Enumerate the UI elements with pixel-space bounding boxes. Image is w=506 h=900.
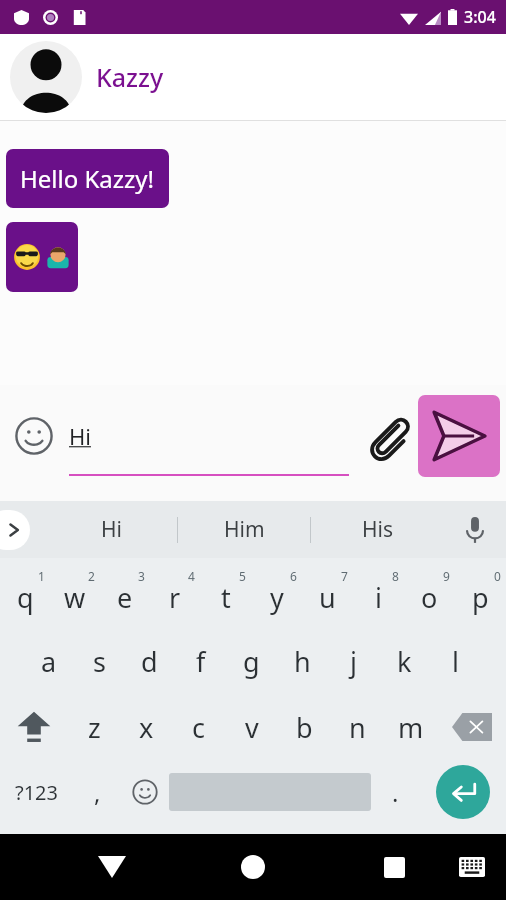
staticText: f — [196, 643, 206, 680]
staticText: q — [17, 579, 34, 616]
button[interactable]: a — [24, 634, 74, 688]
staticText: j — [350, 643, 357, 680]
button[interactable]: Hi — [44, 501, 178, 558]
staticText: Kazzy — [96, 60, 164, 94]
button[interactable] — [6, 222, 78, 292]
staticText: x — [139, 709, 154, 746]
button[interactable]: Home — [229, 843, 277, 891]
button[interactable]: b — [278, 700, 331, 754]
button[interactable]: j — [328, 634, 379, 688]
button[interactable]: c — [172, 700, 225, 754]
button[interactable]: p — [455, 566, 506, 622]
button[interactable]: Back — [88, 843, 136, 891]
button[interactable]: k — [379, 634, 430, 688]
button[interactable]: Switch keyboard — [450, 845, 494, 889]
button[interactable]: Attach — [362, 412, 414, 464]
staticText: 3 — [138, 568, 145, 584]
staticText: y — [270, 579, 284, 616]
staticText: 7 — [341, 568, 348, 584]
button[interactable]: Voice input — [444, 501, 506, 558]
button[interactable]: i — [353, 566, 404, 622]
button[interactable]: Enter — [419, 764, 506, 820]
button[interactable]: Backspace — [437, 700, 506, 754]
button[interactable]: Him — [178, 501, 311, 558]
staticText: 5 — [239, 568, 246, 584]
button[interactable]: o — [404, 566, 455, 622]
button[interactable]: x — [120, 700, 172, 754]
staticText: s — [93, 643, 106, 680]
staticText: m — [398, 709, 424, 746]
button[interactable]: v — [225, 700, 278, 754]
staticText: t — [221, 579, 231, 616]
button[interactable]: More suggestions — [0, 510, 30, 550]
staticText: b — [296, 709, 313, 746]
staticText: e — [117, 579, 133, 616]
button[interactable]: d — [124, 634, 175, 688]
staticText: l — [452, 643, 459, 680]
button[interactable]: Emoji — [14, 416, 54, 456]
button[interactable]: Shift — [0, 700, 68, 754]
staticText: z — [88, 709, 101, 746]
button[interactable]: l — [430, 634, 481, 688]
button[interactable]: y — [251, 566, 302, 622]
staticText: ?123 — [15, 779, 58, 806]
staticText: His — [362, 515, 394, 544]
staticText: i — [375, 579, 382, 616]
staticText: 4 — [188, 568, 195, 584]
button[interactable]: g — [226, 634, 277, 688]
staticText: u — [319, 579, 336, 616]
staticText: h — [294, 643, 311, 680]
button[interactable]: Send — [418, 395, 500, 477]
button[interactable]: q — [0, 566, 50, 622]
staticText: a — [41, 643, 57, 680]
staticText: g — [243, 643, 260, 680]
button[interactable]: Contact avatar — [10, 41, 82, 113]
button[interactable]: z — [68, 700, 120, 754]
staticText: k — [397, 643, 412, 680]
staticText: Hi — [101, 515, 122, 544]
button[interactable]: s — [74, 634, 124, 688]
staticText: Him — [224, 515, 265, 544]
staticText: d — [141, 643, 158, 680]
staticText: , — [94, 776, 101, 809]
button[interactable]: r — [150, 566, 200, 622]
button[interactable]: Hello Kazzy! — [6, 149, 169, 208]
staticText: . — [392, 776, 399, 809]
button[interactable]: h — [277, 634, 328, 688]
button[interactable]: Recents — [370, 843, 418, 891]
button[interactable]: w — [50, 566, 100, 622]
staticText: 1 — [38, 568, 45, 584]
button[interactable]: His — [311, 501, 444, 558]
staticText: w — [64, 579, 86, 616]
button[interactable]: . — [371, 764, 419, 820]
button[interactable]: t — [200, 566, 251, 622]
staticText: n — [349, 709, 366, 746]
button[interactable]: ?123 — [0, 764, 73, 820]
staticText: Hi — [69, 421, 91, 451]
button[interactable]: Emoji keyboard — [121, 764, 169, 820]
button[interactable]: u — [302, 566, 353, 622]
staticText: 9 — [443, 568, 450, 584]
staticText: 3:04 — [464, 6, 496, 28]
button[interactable]: e — [100, 566, 150, 622]
staticText: 8 — [392, 568, 399, 584]
staticText: Hello Kazzy! — [20, 162, 155, 195]
staticText: 2 — [88, 568, 95, 584]
staticText: c — [192, 709, 205, 746]
staticText: 6 — [290, 568, 297, 584]
staticText: 0 — [494, 568, 501, 584]
button[interactable]: m — [384, 700, 437, 754]
staticText: o — [421, 579, 438, 616]
button[interactable]: f — [175, 634, 226, 688]
button[interactable]: n — [331, 700, 384, 754]
staticText: r — [169, 579, 181, 616]
staticText: p — [472, 579, 489, 616]
staticText: v — [245, 709, 259, 746]
button[interactable]: , — [73, 764, 121, 820]
